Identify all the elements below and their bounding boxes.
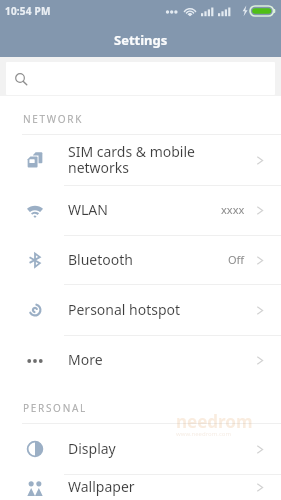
- staticText: xxxx: [221, 202, 245, 217]
- button[interactable]: SIM cards & mobile networks: [0, 135, 281, 186]
- staticText: WLAN: [68, 200, 221, 219]
- button[interactable]: WLAN: [0, 186, 281, 236]
- button[interactable]: More: [0, 336, 281, 385]
- staticText: Settings: [114, 31, 168, 49]
- staticText: Wallpaper: [68, 477, 254, 496]
- staticText: More: [68, 350, 254, 369]
- staticText: Off: [228, 252, 245, 267]
- button[interactable]: Search: [6, 62, 275, 95]
- button[interactable]: Bluetooth: [0, 236, 281, 285]
- button[interactable]: Wallpaper: [0, 475, 281, 500]
- staticText: Personal hotspot: [68, 300, 254, 319]
- staticText: Display: [68, 439, 254, 458]
- staticText: needrom: [176, 410, 253, 433]
- staticText: www.needrom.com: [176, 430, 232, 438]
- staticText: PERSONAL: [23, 401, 87, 415]
- staticText: NETWORK: [23, 112, 84, 126]
- button[interactable]: Display: [0, 424, 281, 475]
- staticText: Bluetooth: [68, 250, 228, 269]
- staticText: SIM cards & mobile networks: [68, 142, 254, 177]
- staticText: 10:54 PM: [5, 4, 51, 18]
- button[interactable]: Personal hotspot: [0, 285, 281, 336]
